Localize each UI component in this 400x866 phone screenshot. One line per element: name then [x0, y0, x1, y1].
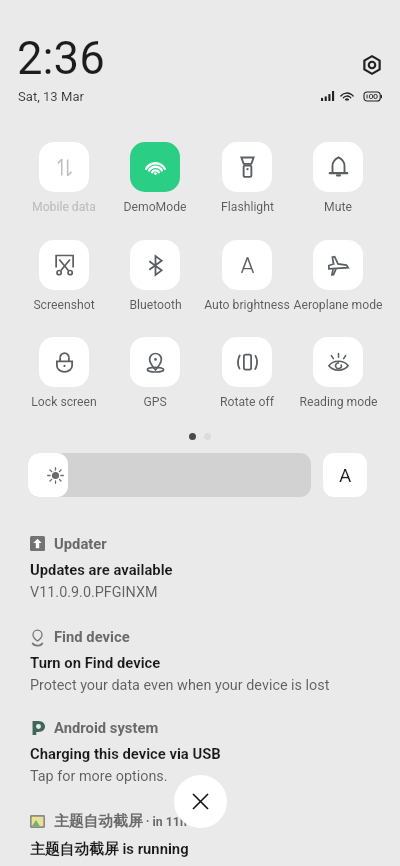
staticText: Tap for more options.	[30, 768, 168, 785]
button[interactable]: Screenshot	[19, 240, 109, 312]
button[interactable]: Updater	[30, 535, 400, 601]
staticText: Auto brightness	[204, 298, 290, 312]
button[interactable]: Mute	[293, 142, 383, 214]
staticText: DemoMode	[123, 200, 187, 214]
staticText: Screenshot	[33, 298, 95, 312]
button[interactable]: Android system	[30, 719, 400, 785]
staticText: 主题自动截屏 is running	[30, 840, 189, 859]
staticText: Reading mode	[299, 395, 378, 409]
staticText: Lock screen	[31, 395, 97, 409]
staticText: Updates are available	[30, 561, 173, 578]
staticText: Mobile data	[32, 200, 96, 214]
button[interactable]: Find device	[30, 628, 400, 694]
button[interactable]: Mobile data	[19, 142, 109, 214]
staticText: Turn on Find device	[30, 654, 161, 671]
button[interactable]: Rotate off	[202, 337, 292, 409]
button[interactable]: Flashlight	[202, 142, 292, 214]
staticText: GPS	[143, 395, 167, 409]
button[interactable]: Lock screen	[19, 337, 109, 409]
staticText: Aeroplane mode	[293, 298, 383, 312]
staticText: Rotate off	[220, 395, 274, 409]
staticText: V11.0.9.0.PFGINXM	[30, 584, 158, 601]
button[interactable]: GPS	[110, 337, 200, 409]
button[interactable]: Settings	[360, 53, 384, 77]
staticText: Android system	[54, 719, 159, 736]
staticText: Protect your data even when your device …	[30, 677, 330, 694]
staticText: Mute	[324, 200, 352, 214]
button[interactable]: Auto brightness	[202, 240, 292, 312]
button[interactable]: DemoMode	[110, 142, 200, 214]
staticText: Updater	[54, 535, 107, 552]
staticText: Bluetooth	[129, 298, 182, 312]
button[interactable]: Clear all notifications	[174, 775, 227, 828]
staticText: 主题自动截屏 · in 11h	[54, 812, 187, 831]
button[interactable]: 主题自动截屏 · in 11h	[30, 812, 400, 859]
button[interactable]: Bluetooth	[110, 240, 200, 312]
staticText: A	[339, 464, 352, 486]
staticText: Charging this device via USB	[30, 745, 221, 762]
button[interactable]: Brightness	[28, 453, 311, 497]
button[interactable]: Aeroplane mode	[293, 240, 383, 312]
staticText: 2:36	[17, 32, 105, 85]
staticText: Flashlight	[221, 200, 274, 214]
staticText: Sat, 13 Mar	[18, 89, 84, 104]
staticText: Find device	[54, 628, 130, 645]
button[interactable]: Auto brightness	[323, 453, 367, 497]
button[interactable]: Reading mode	[293, 337, 383, 409]
